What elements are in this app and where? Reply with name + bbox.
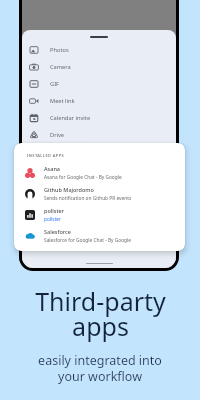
staticText: Salesforce xyxy=(44,228,71,235)
staticText: Salesforce for Google Chat - By Google xyxy=(44,237,131,244)
staticText: Sends notification on Github PR events xyxy=(44,195,132,202)
staticText: Photos xyxy=(50,46,69,54)
button[interactable]: Drive xyxy=(22,126,176,143)
staticText: pollster xyxy=(44,216,62,223)
staticText: GIF xyxy=(50,80,60,88)
staticText: Asana xyxy=(44,165,61,172)
button[interactable]: Meet link xyxy=(22,92,176,109)
staticText: Camera xyxy=(50,63,71,71)
staticText: Asana for Google Chat - By Google xyxy=(44,174,122,181)
button[interactable]: Camera xyxy=(22,58,176,75)
staticText: Third-party apps xyxy=(35,284,166,343)
button[interactable]: Calendar invite xyxy=(22,109,176,126)
staticText: pollster xyxy=(44,207,65,214)
button[interactable]: Github Majordomo xyxy=(14,183,185,204)
staticText: INSTALLED APPS xyxy=(27,153,65,158)
button[interactable]: Photos xyxy=(22,41,176,58)
button[interactable]: pollster xyxy=(14,204,185,225)
staticText: Github Majordomo xyxy=(44,186,94,193)
staticText: Meet link xyxy=(50,97,75,105)
button[interactable]: Salesforce xyxy=(14,225,185,246)
button[interactable]: GIF xyxy=(22,75,176,92)
button[interactable]: Asana xyxy=(14,162,185,183)
staticText: Calendar invite xyxy=(50,114,91,122)
staticText: Drive xyxy=(50,131,65,139)
staticText: easily integrated into your workflow xyxy=(38,352,162,384)
